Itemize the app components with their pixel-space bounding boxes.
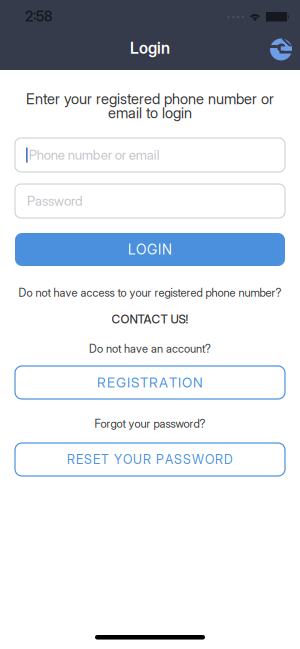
staticText: L O G I N <box>128 241 172 258</box>
staticText: email to login <box>108 104 192 122</box>
staticText: CONTACT US! <box>111 312 188 326</box>
staticText: Do not have access to your registered ph… <box>18 286 281 300</box>
staticText: Password <box>27 193 83 209</box>
staticText: R E S E T Y O U R P A S S W O R D <box>67 452 233 467</box>
staticText: Forgot your password? <box>94 417 205 431</box>
staticText: R E G I S T R A T I O N <box>97 374 203 391</box>
staticText: Enter your registered phone number or <box>26 90 274 108</box>
staticText: Phone number or email <box>29 147 160 163</box>
staticText: Login <box>130 38 170 57</box>
staticText: Do not have an account? <box>89 342 211 356</box>
staticText: 2:58 <box>25 8 52 25</box>
